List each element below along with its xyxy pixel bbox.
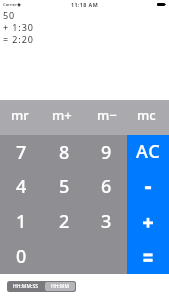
staticText: 3 bbox=[101, 209, 112, 234]
other: Plus bbox=[127, 204, 169, 239]
other: Equals bbox=[127, 239, 169, 274]
staticText: AC bbox=[136, 139, 161, 164]
button[interactable]: 2 bbox=[43, 204, 85, 239]
button[interactable]: HH:MM bbox=[45, 282, 75, 291]
staticText: Carrier bbox=[3, 2, 17, 8]
staticText: 0 bbox=[16, 244, 27, 269]
staticText: HH:MM bbox=[51, 283, 70, 290]
button[interactable]: m− bbox=[85, 100, 127, 135]
button[interactable]: 6 bbox=[85, 169, 127, 204]
staticText: 6 bbox=[101, 174, 112, 199]
staticText: 50 bbox=[3, 9, 16, 21]
staticText: 7 bbox=[16, 140, 27, 165]
staticText: HH:MM:SS bbox=[13, 283, 38, 290]
button[interactable]: 7 bbox=[0, 135, 43, 169]
button[interactable]: Minus bbox=[127, 169, 169, 204]
button[interactable]: 3 bbox=[85, 204, 127, 239]
button[interactable]: Plus bbox=[127, 204, 169, 239]
button[interactable]: m+ bbox=[43, 100, 85, 135]
staticText: mr bbox=[11, 106, 29, 124]
button[interactable]: AC bbox=[127, 135, 169, 169]
staticText: m− bbox=[97, 106, 117, 124]
button[interactable]: Equals bbox=[127, 239, 169, 274]
staticText: + 1:30 bbox=[3, 21, 34, 33]
staticText: m+ bbox=[52, 106, 72, 124]
staticText: 5 bbox=[59, 174, 70, 199]
staticText: 11:18 AM bbox=[71, 1, 99, 8]
button[interactable]: 1 bbox=[0, 204, 43, 239]
button[interactable]: 0 bbox=[0, 239, 43, 274]
button[interactable]: 8 bbox=[43, 135, 85, 169]
staticText: 1 bbox=[16, 209, 27, 234]
button[interactable]: mc bbox=[127, 100, 169, 135]
other: Minus bbox=[127, 169, 169, 204]
button[interactable]: HH:MM:SS bbox=[7, 281, 44, 292]
staticText: = 2:20 bbox=[3, 33, 34, 45]
staticText: 2 bbox=[59, 209, 70, 234]
button[interactable]: 5 bbox=[43, 169, 85, 204]
button[interactable]: 4 bbox=[0, 169, 43, 204]
staticText: mc bbox=[137, 106, 156, 124]
staticText: 4 bbox=[16, 174, 27, 199]
staticText: 8 bbox=[59, 140, 70, 165]
button[interactable]: 9 bbox=[85, 135, 127, 169]
button[interactable]: mr bbox=[0, 100, 43, 135]
staticText: 9 bbox=[101, 140, 112, 165]
